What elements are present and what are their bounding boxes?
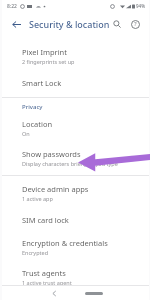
staticText: Display characters briefly as you type bbox=[22, 160, 118, 167]
staticText: SIM card lock bbox=[22, 215, 69, 225]
button[interactable]: Encryption & credentials bbox=[2, 235, 149, 265]
button[interactable]: Home bbox=[85, 292, 103, 295]
button[interactable]: Smart Lock bbox=[2, 73, 149, 97]
button[interactable]: Pixel Imprint bbox=[2, 42, 149, 73]
button[interactable]: Back bbox=[8, 16, 25, 33]
staticText: 2 fingerprints set up bbox=[22, 58, 75, 65]
staticText: Smart Lock bbox=[22, 78, 62, 88]
button[interactable]: Show passwords bbox=[2, 145, 149, 172]
staticText: Privacy bbox=[22, 103, 43, 111]
staticText: 1 active trust agent bbox=[22, 279, 72, 286]
staticText: Trust agents bbox=[22, 268, 66, 278]
staticText: Pixel Imprint bbox=[22, 47, 67, 57]
button[interactable]: Search bbox=[109, 16, 125, 32]
button[interactable]: Location bbox=[2, 115, 149, 145]
button[interactable]: Show passwords toggle bbox=[125, 153, 141, 164]
staticText: Encrypted bbox=[22, 249, 49, 256]
button[interactable]: SIM card lock bbox=[2, 211, 149, 235]
staticText: 1 active app bbox=[22, 195, 53, 202]
button[interactable]: Back bbox=[48, 287, 60, 299]
staticText: 94% bbox=[136, 3, 145, 9]
button[interactable]: Device admin apps bbox=[2, 179, 149, 211]
staticText: Security & location bbox=[29, 18, 110, 30]
staticText: Encryption & credentials bbox=[22, 238, 108, 248]
staticText: Show passwords bbox=[22, 149, 81, 159]
staticText: Location bbox=[22, 119, 53, 129]
staticText: 8:22 bbox=[7, 3, 17, 10]
button[interactable]: Help bbox=[127, 16, 143, 32]
staticText: On bbox=[22, 130, 30, 137]
staticText: Device admin apps bbox=[22, 184, 89, 194]
button[interactable]: Trust agents bbox=[2, 265, 149, 295]
staticText: ? bbox=[134, 20, 137, 28]
